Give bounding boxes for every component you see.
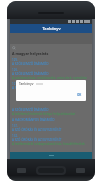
staticText: 125.: [12, 58, 18, 62]
staticText: A SZÓ ÖRÖKÁS ÉS AZ EGYSZERŰSÍT: [12, 128, 62, 132]
staticText: A SZÓ ÖRÖKÁS ÉS AZ EGYSZERŰSÍT: [12, 138, 62, 142]
button[interactable]: A SZÓELEMZŐ ÍRÁSMÓD: [12, 108, 90, 112]
staticText: A HAGYOMÁNYOS ÍRÁSMÓD: [12, 118, 55, 122]
staticText: A SZÓELEMZŐ ÍRÁSMÓD: [12, 108, 49, 112]
button[interactable]: A SZÓ ÖRÖKÁS ÉS AZ EGYSZERŰSÍT: [12, 138, 90, 142]
staticText: A szóelemző írásmód elvégzi helyesírásun…: [12, 112, 76, 116]
staticText: A magyar helyesírás: [12, 51, 49, 56]
button[interactable]: 125.: [12, 58, 90, 62]
button[interactable]: A magyar helyesírás: [12, 51, 90, 56]
button[interactable]: A SZÓELEMZŐ: [12, 86, 90, 90]
staticText: A SZÓELEMZŐ ÍRÁSMÓD: [12, 72, 49, 76]
button[interactable]: 132.: [12, 134, 90, 138]
button[interactable]: 126.: [12, 68, 90, 72]
staticText: 126.: [12, 68, 18, 72]
button[interactable]: A SZÓ ÖRÖKÁS ÉS AZ EGYSZERŰSÍT: [12, 128, 90, 132]
button[interactable]: A mellérendelő szókapcsolatok írás- hozz…: [12, 142, 90, 146]
staticText: A SZÓELEMZŐ ÍRÁSMÓD: [12, 62, 49, 66]
staticText: 131.: [12, 124, 18, 128]
button[interactable]: A HAGYOMÁNYOS ÍRÁSMÓD: [12, 118, 90, 122]
button[interactable]: A szóelemző írás- mód követke- zetes érv…: [12, 76, 90, 80]
staticText: A mellérendelő szókapcsolatok írás- hozz…: [12, 142, 85, 146]
button[interactable]: OK: [76, 92, 83, 98]
button[interactable]: A szóelemző írásmód elvégzi helyesírásun…: [12, 112, 90, 116]
staticText: OK: [77, 93, 82, 97]
staticText: Tankönyv: [19, 82, 34, 86]
staticText: 127.: [12, 82, 18, 86]
button[interactable]: A SZÓELEMZŐ ÍRÁSMÓD: [12, 72, 90, 76]
button[interactable]: Navigation bar: [10, 152, 92, 159]
button[interactable]: Home: [36, 166, 66, 175]
staticText: A SZÓELEMZŐ: [12, 86, 34, 90]
button[interactable]: 127.: [12, 82, 90, 86]
staticText: 132.: [12, 134, 18, 138]
button[interactable]: A SZÓELEMZŐ ÍRÁSMÓD: [12, 62, 90, 66]
button[interactable]: Tankönyv: [10, 24, 92, 33]
staticText: A szóelemző írás- mód követke- zetes érv…: [12, 76, 88, 80]
button[interactable]: 131.: [12, 124, 90, 128]
staticText: Tankönyv: [42, 26, 61, 31]
